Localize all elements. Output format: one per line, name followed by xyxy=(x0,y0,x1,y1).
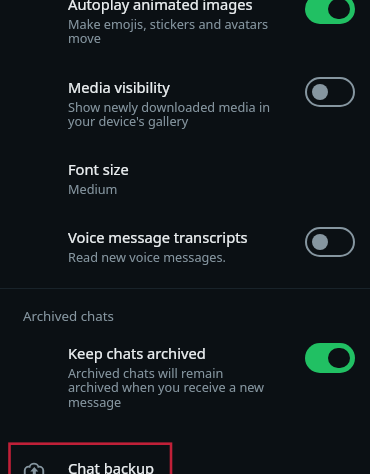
staticText: Voice message transcripts xyxy=(68,227,248,247)
staticText: Make emojis, stickers and avatars move xyxy=(68,15,273,47)
button[interactable] xyxy=(0,0,370,54)
button[interactable]: Voice message transcripts xyxy=(305,227,355,257)
staticText: Keep chats archived xyxy=(68,343,206,363)
other: Chat backup xyxy=(22,458,46,474)
staticText: Medium xyxy=(68,180,118,197)
button[interactable] xyxy=(0,336,370,418)
staticText: Read new voice messages. xyxy=(68,248,226,265)
staticText: Show newly downloaded media in your devi… xyxy=(68,98,273,130)
button[interactable] xyxy=(0,152,370,204)
staticText: Archived chats xyxy=(23,307,114,325)
button[interactable]: Keep chats archived xyxy=(305,343,355,373)
button[interactable]: Autoplay animated images xyxy=(305,0,355,24)
staticText: Chat backup xyxy=(68,458,154,474)
staticText: Media visibility xyxy=(68,77,170,97)
button[interactable] xyxy=(0,443,370,474)
staticText: Archived chats will remain archived when… xyxy=(68,364,273,411)
button[interactable] xyxy=(0,220,370,272)
staticText: Autoplay animated images xyxy=(68,0,253,14)
button[interactable]: Media visibility xyxy=(305,77,355,107)
button[interactable] xyxy=(0,70,370,138)
staticText: Font size xyxy=(68,159,129,179)
